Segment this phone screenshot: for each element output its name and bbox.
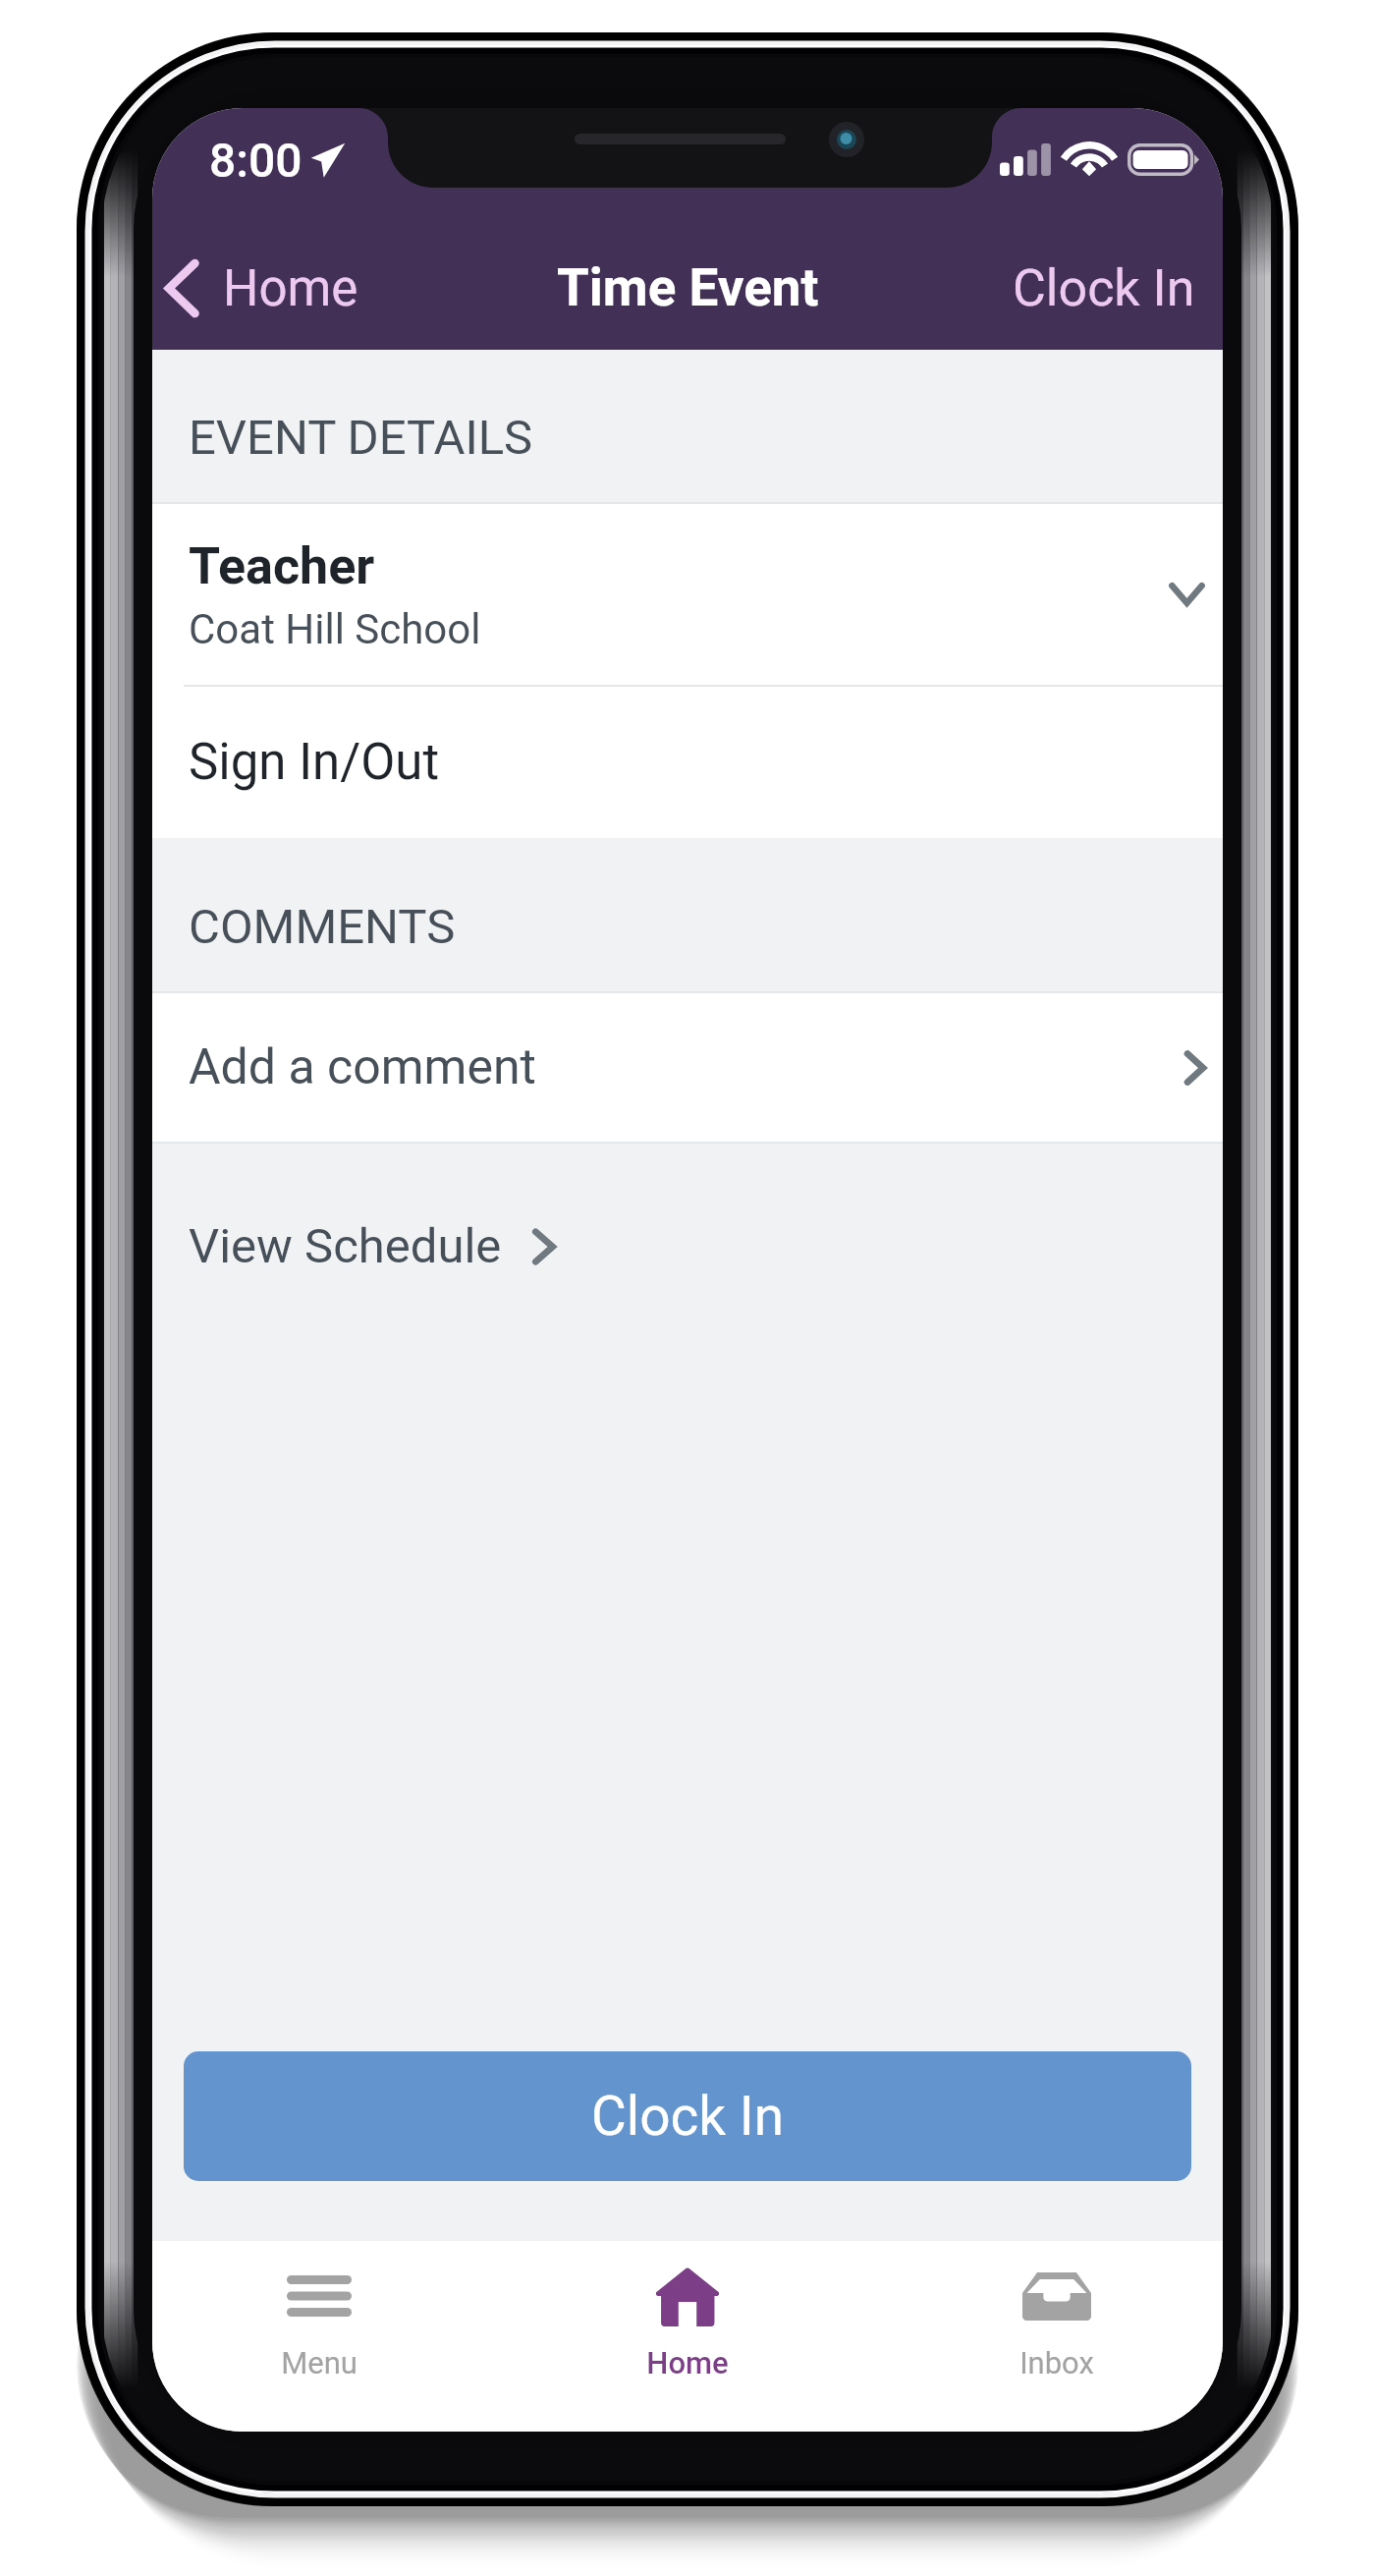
button[interactable]: Sign In/Out	[152, 687, 1223, 838]
staticText: Coat Hill School	[189, 605, 481, 653]
staticText: EVENT DETAILS	[189, 410, 533, 466]
staticText: 8:00	[209, 133, 302, 188]
button[interactable]: Teacher	[152, 504, 1223, 685]
other: Expand	[1169, 575, 1205, 614]
staticText: Home	[223, 259, 358, 318]
button[interactable]: View Schedule	[189, 1218, 556, 1274]
staticText: Clock In	[591, 2085, 785, 2148]
button[interactable]: Add a comment	[152, 993, 1223, 1142]
staticText: Sign In/Out	[189, 733, 440, 792]
staticText: COMMENTS	[189, 899, 456, 955]
staticText: Add a comment	[189, 1038, 1184, 1096]
button[interactable]: Home	[511, 2241, 864, 2432]
staticText: Teacher	[189, 536, 375, 596]
button[interactable]: Menu	[152, 2241, 496, 2432]
staticText: View Schedule	[189, 1218, 502, 1274]
staticText: Menu	[281, 2345, 357, 2380]
button[interactable]: Clock In	[1013, 258, 1223, 350]
staticText: Inbox	[1019, 2345, 1094, 2380]
button[interactable]: Home	[156, 251, 368, 326]
button[interactable]: Inbox	[880, 2241, 1223, 2432]
staticText: Home	[646, 2345, 729, 2380]
button[interactable]: Clock In	[184, 2051, 1191, 2181]
staticText: Time Event	[557, 257, 819, 318]
